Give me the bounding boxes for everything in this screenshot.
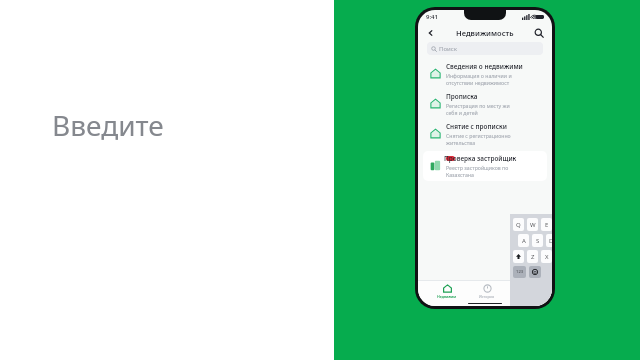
button[interactable]: S	[532, 234, 543, 247]
button[interactable]: История	[475, 283, 499, 300]
staticText: Введите	[52, 106, 164, 144]
staticText: A	[522, 237, 526, 245]
staticText: Z	[531, 253, 535, 261]
staticText: Недвижим	[437, 294, 457, 299]
staticText: Сведения о недвижими	[446, 62, 523, 71]
staticText: Поиск	[439, 45, 457, 53]
button[interactable]: 123	[513, 266, 526, 278]
button[interactable]: Недвижим	[433, 283, 461, 300]
button[interactable]: Emoji	[529, 266, 541, 278]
staticText: X	[545, 253, 549, 261]
button[interactable]: D	[546, 234, 552, 247]
staticText: себя и детей	[446, 109, 478, 116]
staticText: S	[536, 237, 540, 245]
button[interactable]: X	[541, 250, 552, 263]
staticText: D	[549, 237, 552, 245]
staticText: Снятие с регистрационно	[446, 132, 511, 139]
button[interactable]: Z	[527, 250, 538, 263]
button[interactable]: Поиск	[533, 27, 545, 39]
staticText: Прописка	[446, 92, 478, 101]
staticText: Казахстана	[446, 171, 474, 178]
button[interactable]: A	[518, 234, 529, 247]
button[interactable]: Снятие с прописки	[418, 119, 552, 149]
staticText: Проверка застройщик	[444, 154, 517, 163]
button[interactable]: Прописка	[418, 89, 552, 119]
staticText: Q	[516, 221, 521, 229]
staticText: Информация о наличии и	[446, 72, 512, 79]
button[interactable]: Назад	[425, 27, 437, 39]
staticText: W	[530, 221, 536, 229]
staticText: 9:41	[426, 13, 438, 21]
staticText: Реестр застройщиков по	[446, 164, 509, 171]
button[interactable]: Shift	[513, 250, 524, 263]
staticText: отсутствии недвижимост	[446, 79, 510, 86]
staticText: жительства	[446, 139, 476, 146]
staticText: Недвижимость	[456, 28, 514, 38]
button[interactable]: Q	[513, 218, 524, 231]
staticText: История	[479, 294, 495, 299]
staticText: 123	[516, 269, 524, 275]
staticText: E	[545, 221, 549, 229]
button[interactable]: Сведения о недвижими	[418, 59, 552, 89]
button[interactable]: Проверка застройщик	[423, 151, 547, 181]
staticText: Снятие с прописки	[446, 122, 507, 131]
button[interactable]: W	[527, 218, 538, 231]
staticText: Регистрация по месту жи	[446, 102, 510, 109]
button[interactable]: E	[541, 218, 552, 231]
button[interactable]: Поиск	[427, 42, 543, 55]
